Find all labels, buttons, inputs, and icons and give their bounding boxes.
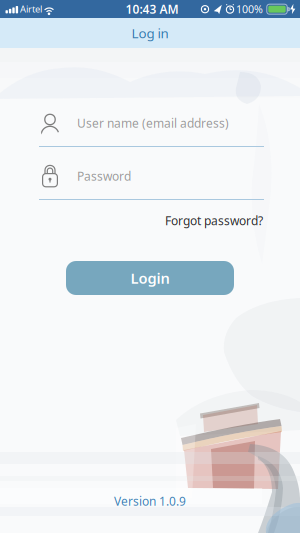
staticText: Airtel: [20, 3, 42, 15]
staticText: 100%: [236, 2, 263, 16]
staticText: Login: [130, 268, 169, 288]
button[interactable]: Password: [0, 165, 300, 200]
button[interactable]: Login: [66, 261, 234, 295]
button[interactable]: User name (email address): [0, 113, 300, 147]
staticText: Password: [77, 168, 131, 184]
staticText: User name (email address): [77, 115, 229, 131]
staticText: 10:43 AM: [125, 1, 178, 17]
staticText: Log in: [131, 24, 168, 42]
button[interactable]: Forgot password?: [165, 212, 263, 228]
staticText: Version 1.0.9: [114, 493, 186, 509]
staticText: Forgot password?: [165, 212, 263, 228]
